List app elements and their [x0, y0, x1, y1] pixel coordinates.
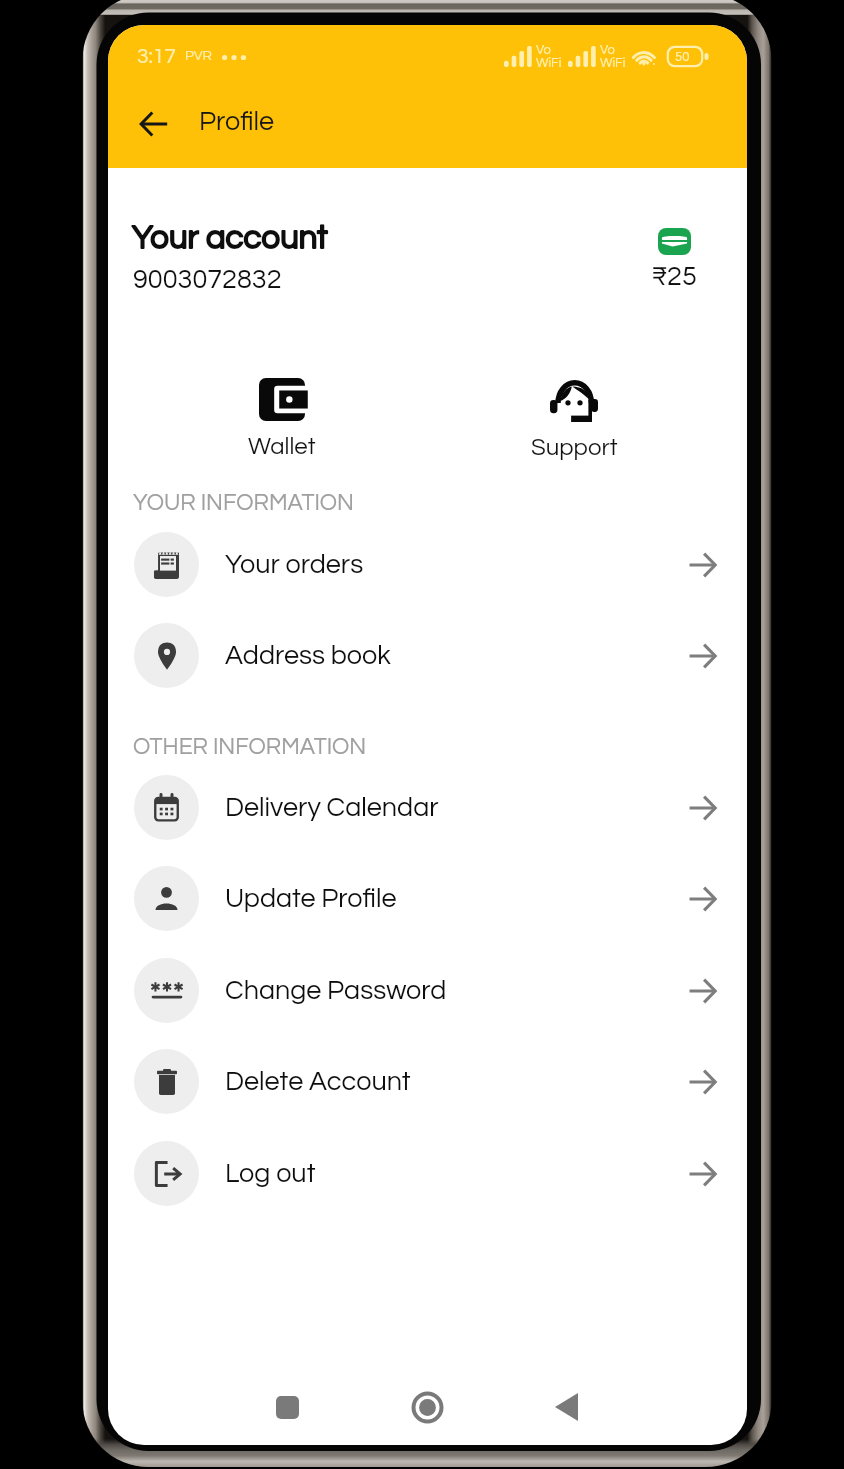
button[interactable]: Wallet	[212, 378, 352, 459]
staticText: Update Profile	[225, 885, 397, 913]
staticText: Delivery Calendar	[225, 794, 439, 822]
button[interactable]: Change Password	[108, 945, 747, 1036]
button[interactable]: Back	[128, 98, 180, 150]
staticText: PVR	[185, 49, 212, 63]
button[interactable]: Address book	[108, 610, 747, 701]
staticText: Vo	[536, 43, 551, 56]
staticText: 3:17	[137, 46, 176, 68]
staticText: Vo	[600, 43, 615, 56]
staticText: Delete Account	[225, 1068, 411, 1096]
staticText: Address book	[225, 642, 391, 670]
staticText: Your orders	[225, 551, 364, 579]
button[interactable]: Support	[504, 378, 644, 460]
staticText: Log out	[225, 1160, 316, 1188]
staticText: Change Password	[225, 977, 447, 1005]
staticText: WiFi	[600, 56, 626, 69]
button[interactable]: Your orders	[108, 519, 747, 610]
staticText: Your account	[132, 221, 328, 255]
button[interactable]: Delete Account	[108, 1036, 747, 1127]
button[interactable]: Back	[536, 1377, 596, 1437]
button[interactable]: Log out	[108, 1128, 747, 1219]
staticText: Wallet	[248, 434, 316, 459]
staticText: OTHER INFORMATION	[133, 735, 367, 759]
staticText: Support	[531, 435, 618, 460]
staticText: 50	[675, 50, 690, 63]
staticText: YOUR INFORMATION	[133, 491, 354, 515]
staticText: ₹25	[651, 263, 697, 291]
button[interactable]: Home	[397, 1377, 457, 1437]
button[interactable]: Update Profile	[108, 853, 747, 944]
staticText: WiFi	[536, 56, 562, 69]
staticText: Your account	[132, 221, 328, 255]
button[interactable]: Delivery Calendar	[108, 762, 747, 853]
staticText: 9003072832	[133, 266, 282, 294]
button[interactable]: ₹25	[634, 228, 714, 291]
button[interactable]: Recents	[257, 1377, 317, 1437]
staticText: Profile	[199, 108, 275, 136]
